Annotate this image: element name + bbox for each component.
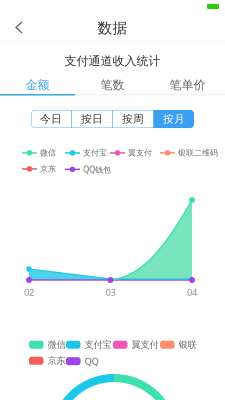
staticText: 金额 bbox=[25, 78, 49, 92]
staticText: 微信 bbox=[40, 148, 56, 158]
button[interactable]: 按日 bbox=[72, 110, 112, 128]
staticText: 翼支付 bbox=[131, 339, 158, 350]
staticText: 微信 bbox=[47, 339, 65, 350]
staticText: 支付通道收入统计 bbox=[64, 54, 160, 68]
staticText: 支付宝 bbox=[84, 339, 111, 350]
staticText: 按日 bbox=[81, 112, 103, 125]
staticText: QQ bbox=[84, 355, 98, 367]
staticText: 银联 bbox=[178, 339, 196, 350]
button[interactable]: Back bbox=[7, 13, 31, 42]
button[interactable]: 笔单价 bbox=[150, 76, 225, 94]
staticText: 按周 bbox=[122, 112, 144, 125]
button[interactable]: 金额 bbox=[0, 76, 75, 94]
staticText: 今日 bbox=[40, 112, 62, 125]
staticText: 支付宝 bbox=[83, 148, 107, 158]
button[interactable]: 今日 bbox=[31, 110, 71, 128]
button[interactable]: 按月 bbox=[154, 110, 194, 128]
staticText: 京东 bbox=[40, 164, 56, 174]
staticText: 翼支付 bbox=[128, 148, 152, 158]
staticText: 京东 bbox=[47, 355, 65, 366]
staticText: 笔数 bbox=[100, 78, 124, 92]
staticText: 04 bbox=[187, 286, 197, 298]
button[interactable]: 按周 bbox=[113, 110, 153, 128]
staticText: 数据 bbox=[97, 19, 127, 37]
staticText: 笔单价 bbox=[169, 78, 205, 92]
staticText: 按月 bbox=[163, 112, 185, 125]
staticText: QQ钱包 bbox=[83, 164, 111, 175]
button[interactable]: 笔数 bbox=[75, 76, 150, 94]
staticText: 银联二维码 bbox=[178, 148, 218, 158]
staticText: 03 bbox=[105, 286, 115, 298]
staticText: 02 bbox=[24, 286, 34, 298]
